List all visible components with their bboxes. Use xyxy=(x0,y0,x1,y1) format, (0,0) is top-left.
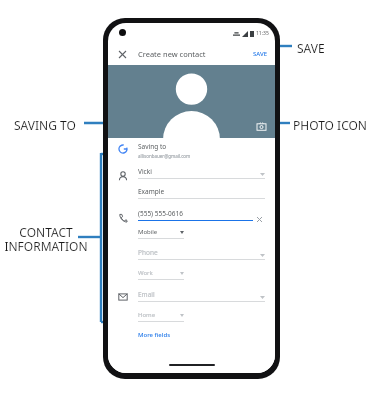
staticText: Saving to xyxy=(138,142,167,151)
staticText: Phone xyxy=(138,248,260,257)
button[interactable]: Work xyxy=(138,269,184,280)
button[interactable]: Mobile xyxy=(138,228,184,239)
button[interactable]: Home xyxy=(138,311,184,322)
staticText: Home xyxy=(138,311,180,319)
staticText: SAVE xyxy=(297,40,325,56)
button[interactable]: SAVE xyxy=(253,50,268,58)
staticText: Email xyxy=(138,290,260,299)
button[interactable]: Clear xyxy=(253,213,265,225)
button[interactable]: Saving to xyxy=(138,138,265,159)
staticText: Mobile xyxy=(138,228,180,236)
button[interactable]: Example xyxy=(138,187,265,199)
button[interactable]: Vicki xyxy=(138,167,265,179)
button[interactable]: More fields xyxy=(138,331,171,339)
staticText: (555) 555-0616 xyxy=(138,209,253,218)
staticText: Vicki xyxy=(138,167,260,176)
staticText: SAVING TO xyxy=(14,117,76,133)
staticText: PHOTO ICON xyxy=(293,117,367,133)
staticText: Work xyxy=(138,269,180,277)
staticText: More fields xyxy=(138,331,171,339)
button[interactable]: Phone xyxy=(138,248,265,260)
staticText: SAVE xyxy=(253,50,268,58)
staticText: Example xyxy=(138,187,265,196)
staticText: CONTACT INFORMATION xyxy=(4,224,88,255)
button[interactable]: Photo icon xyxy=(254,119,268,133)
button[interactable]: (555) 555-0616 xyxy=(138,209,253,221)
button[interactable]: Email xyxy=(138,290,265,302)
button[interactable]: Close xyxy=(114,46,130,62)
staticText: allisonbauer@gmail.com xyxy=(138,153,191,159)
staticText: Create new contact xyxy=(138,49,253,59)
staticText: 11:35 xyxy=(256,30,269,37)
